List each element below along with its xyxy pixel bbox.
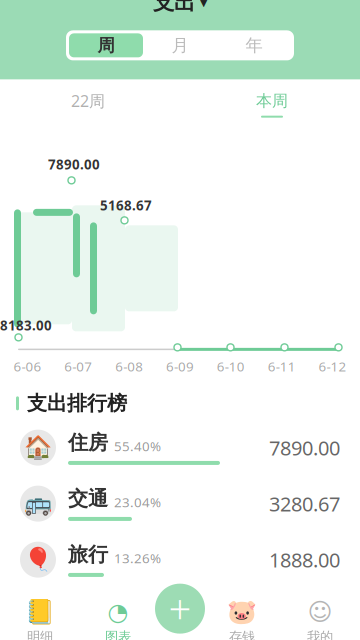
staticText: 7890.00 (48, 155, 100, 173)
button[interactable]: ◔ (84, 599, 152, 640)
staticText: 🐷 (227, 598, 257, 626)
staticText: 6-06 (13, 357, 41, 375)
button[interactable]: 支出 (153, 0, 207, 14)
staticText: ▾ (200, 0, 207, 11)
staticText: 交通 (68, 486, 108, 511)
staticText: 周 (97, 35, 114, 56)
button[interactable]: 🚌 (0, 476, 360, 532)
staticText: 旅行 (68, 542, 108, 567)
button[interactable]: 周 (69, 33, 143, 57)
staticText: 本周 (256, 91, 288, 111)
button[interactable]: 🐷 (208, 599, 276, 640)
button[interactable]: 月 (143, 33, 217, 57)
staticText: 6-08 (115, 357, 143, 375)
staticText: 🏠 (24, 435, 52, 461)
staticText: 住房 (68, 430, 108, 455)
staticText: 7890.00 (269, 434, 340, 461)
staticText: 年 (245, 35, 262, 56)
button[interactable]: 📒 (6, 599, 74, 640)
staticText: 6-07 (64, 357, 92, 375)
staticText: 📒 (25, 598, 55, 626)
staticText: ☺ (307, 598, 332, 625)
staticText: 6-10 (217, 357, 245, 375)
staticText: 22周 (71, 90, 105, 111)
button[interactable]: 本周 (240, 85, 304, 123)
staticText: 图表 (105, 629, 131, 640)
button[interactable]: ☺ (286, 599, 354, 640)
staticText: 支出排行榜 (27, 391, 127, 416)
staticText: ◔ (107, 598, 128, 625)
staticText: 6-11 (268, 357, 296, 375)
staticText: 我的 (307, 629, 333, 640)
button[interactable]: 🎈 (0, 532, 360, 588)
staticText: 3280.67 (269, 490, 340, 517)
button[interactable]: 🏠 (0, 420, 360, 476)
staticText: 🚌 (24, 491, 52, 517)
staticText: 月 (171, 35, 188, 56)
staticText: 1888.00 (269, 546, 340, 573)
staticText: 5168.67 (100, 196, 152, 214)
staticText: 8183.00 (0, 316, 52, 334)
button[interactable]: 22周 (56, 85, 120, 123)
button[interactable]: 年 (217, 33, 291, 57)
staticText: 6-12 (319, 357, 347, 375)
staticText: + (168, 582, 191, 635)
staticText: 13.26% (114, 549, 161, 567)
staticText: 6-09 (166, 357, 194, 375)
staticText: 23.04% (114, 493, 161, 511)
staticText: 存钱 (229, 629, 255, 640)
staticText: 🎈 (24, 547, 52, 573)
staticText: 支出 (153, 0, 195, 15)
staticText: 明细 (27, 629, 53, 640)
staticText: 55.40% (114, 437, 161, 455)
button[interactable]: Add record (153, 582, 207, 636)
